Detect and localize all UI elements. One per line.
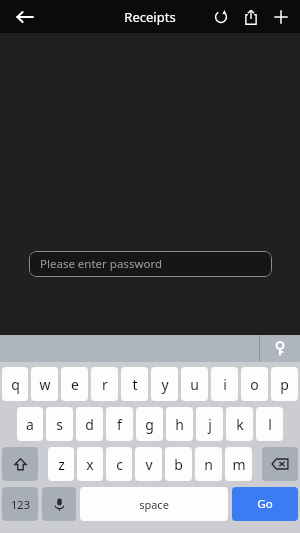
button[interactable]: Share bbox=[236, 2, 266, 32]
staticText: d bbox=[85, 415, 94, 434]
button[interactable]: b bbox=[165, 447, 192, 481]
button[interactable]: Please enter password bbox=[29, 251, 272, 277]
staticText: Go bbox=[257, 496, 273, 512]
button[interactable]: x bbox=[77, 447, 103, 481]
staticText: 123 bbox=[11, 497, 30, 512]
staticText: w bbox=[39, 375, 51, 394]
button[interactable]: k bbox=[226, 407, 253, 441]
staticText: m bbox=[232, 455, 246, 474]
button[interactable]: i bbox=[211, 367, 238, 401]
staticText: space bbox=[139, 497, 169, 512]
button[interactable]: Add bbox=[266, 2, 296, 32]
button[interactable]: Passwords bbox=[260, 335, 300, 362]
staticText: Please enter password bbox=[40, 256, 162, 272]
staticText: s bbox=[56, 415, 63, 434]
staticText: o bbox=[250, 375, 259, 394]
staticText: k bbox=[236, 415, 244, 434]
button[interactable]: c bbox=[106, 447, 132, 481]
button[interactable]: Back bbox=[8, 0, 42, 33]
staticText: t bbox=[132, 375, 138, 394]
button[interactable]: l bbox=[256, 407, 283, 441]
staticText: q bbox=[11, 375, 20, 394]
button[interactable]: a bbox=[17, 407, 43, 441]
button[interactable]: Go bbox=[232, 487, 298, 521]
button[interactable]: n bbox=[195, 447, 222, 481]
button[interactable]: q bbox=[2, 367, 28, 401]
button[interactable]: p bbox=[271, 367, 298, 401]
staticText: y bbox=[161, 375, 169, 394]
staticText: b bbox=[174, 455, 183, 474]
button[interactable]: j bbox=[196, 407, 223, 441]
staticText: n bbox=[204, 455, 213, 474]
button[interactable]: h bbox=[166, 407, 193, 441]
button[interactable]: v bbox=[135, 447, 162, 481]
staticText: r bbox=[102, 375, 108, 394]
staticText: Receipts bbox=[124, 8, 176, 26]
button[interactable]: m bbox=[225, 447, 252, 481]
staticText: a bbox=[26, 415, 34, 434]
button[interactable]: s bbox=[46, 407, 73, 441]
staticText: j bbox=[208, 415, 212, 434]
staticText: p bbox=[280, 375, 289, 394]
button[interactable]: space bbox=[80, 487, 228, 521]
button[interactable]: e bbox=[61, 367, 88, 401]
button[interactable]: g bbox=[136, 407, 163, 441]
button[interactable]: z bbox=[48, 447, 74, 481]
button[interactable]: Refresh bbox=[206, 2, 236, 32]
button[interactable]: Shift bbox=[2, 447, 38, 481]
button[interactable]: t bbox=[121, 367, 148, 401]
button[interactable]: d bbox=[76, 407, 103, 441]
button[interactable]: y bbox=[151, 367, 178, 401]
staticText: h bbox=[175, 415, 184, 434]
staticText: c bbox=[116, 455, 123, 474]
staticText: i bbox=[223, 375, 227, 394]
staticText: e bbox=[71, 375, 79, 394]
button[interactable]: Dictate bbox=[42, 487, 76, 521]
button[interactable]: f bbox=[106, 407, 133, 441]
staticText: z bbox=[58, 455, 65, 474]
staticText: u bbox=[190, 375, 199, 394]
button[interactable]: w bbox=[31, 367, 58, 401]
button[interactable]: Backspace bbox=[262, 447, 298, 481]
button[interactable]: 123 bbox=[2, 487, 38, 521]
staticText: g bbox=[145, 415, 154, 434]
staticText: x bbox=[86, 455, 94, 474]
staticText: l bbox=[268, 415, 272, 434]
staticText: f bbox=[117, 415, 122, 434]
button[interactable]: u bbox=[181, 367, 208, 401]
button[interactable]: o bbox=[241, 367, 268, 401]
staticText: v bbox=[145, 455, 153, 474]
button[interactable]: r bbox=[91, 367, 118, 401]
